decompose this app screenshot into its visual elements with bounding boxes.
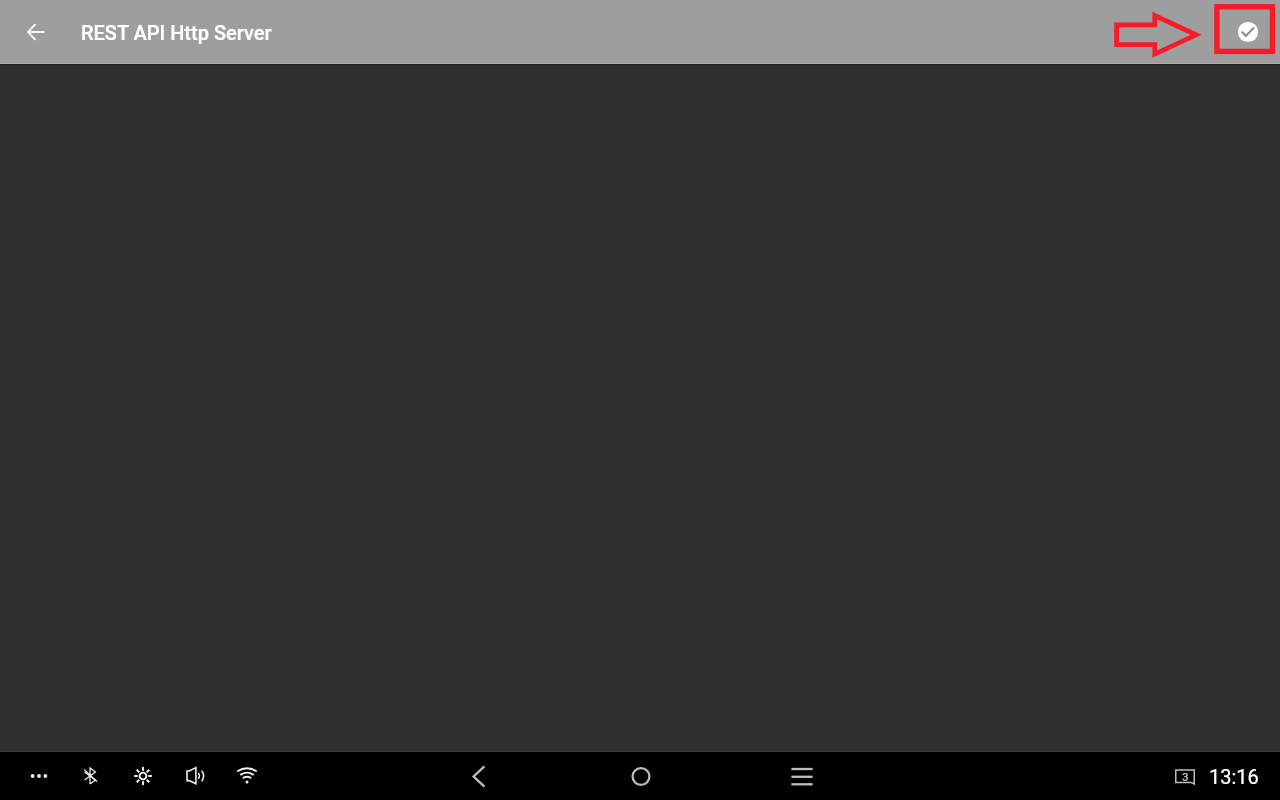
button[interactable]: Navigate up <box>0 0 72 64</box>
button[interactable]: Recent apps <box>778 752 826 800</box>
button[interactable]: 13:16 <box>1204 752 1264 800</box>
button[interactable]: Back <box>455 752 503 800</box>
button[interactable]: Brightness <box>126 752 160 800</box>
button[interactable]: Done <box>1216 0 1280 64</box>
staticText: REST API Http Server <box>81 21 272 44</box>
button[interactable]: Wi-Fi <box>230 752 264 800</box>
button[interactable]: 3 notifications <box>1171 752 1199 800</box>
button[interactable]: Home <box>617 752 665 800</box>
button[interactable]: More options <box>21 752 57 800</box>
staticText: 13:16 <box>1209 765 1259 788</box>
button[interactable]: Volume <box>178 752 212 800</box>
button[interactable]: Bluetooth off <box>73 752 107 800</box>
staticText: 3 <box>1182 770 1189 783</box>
